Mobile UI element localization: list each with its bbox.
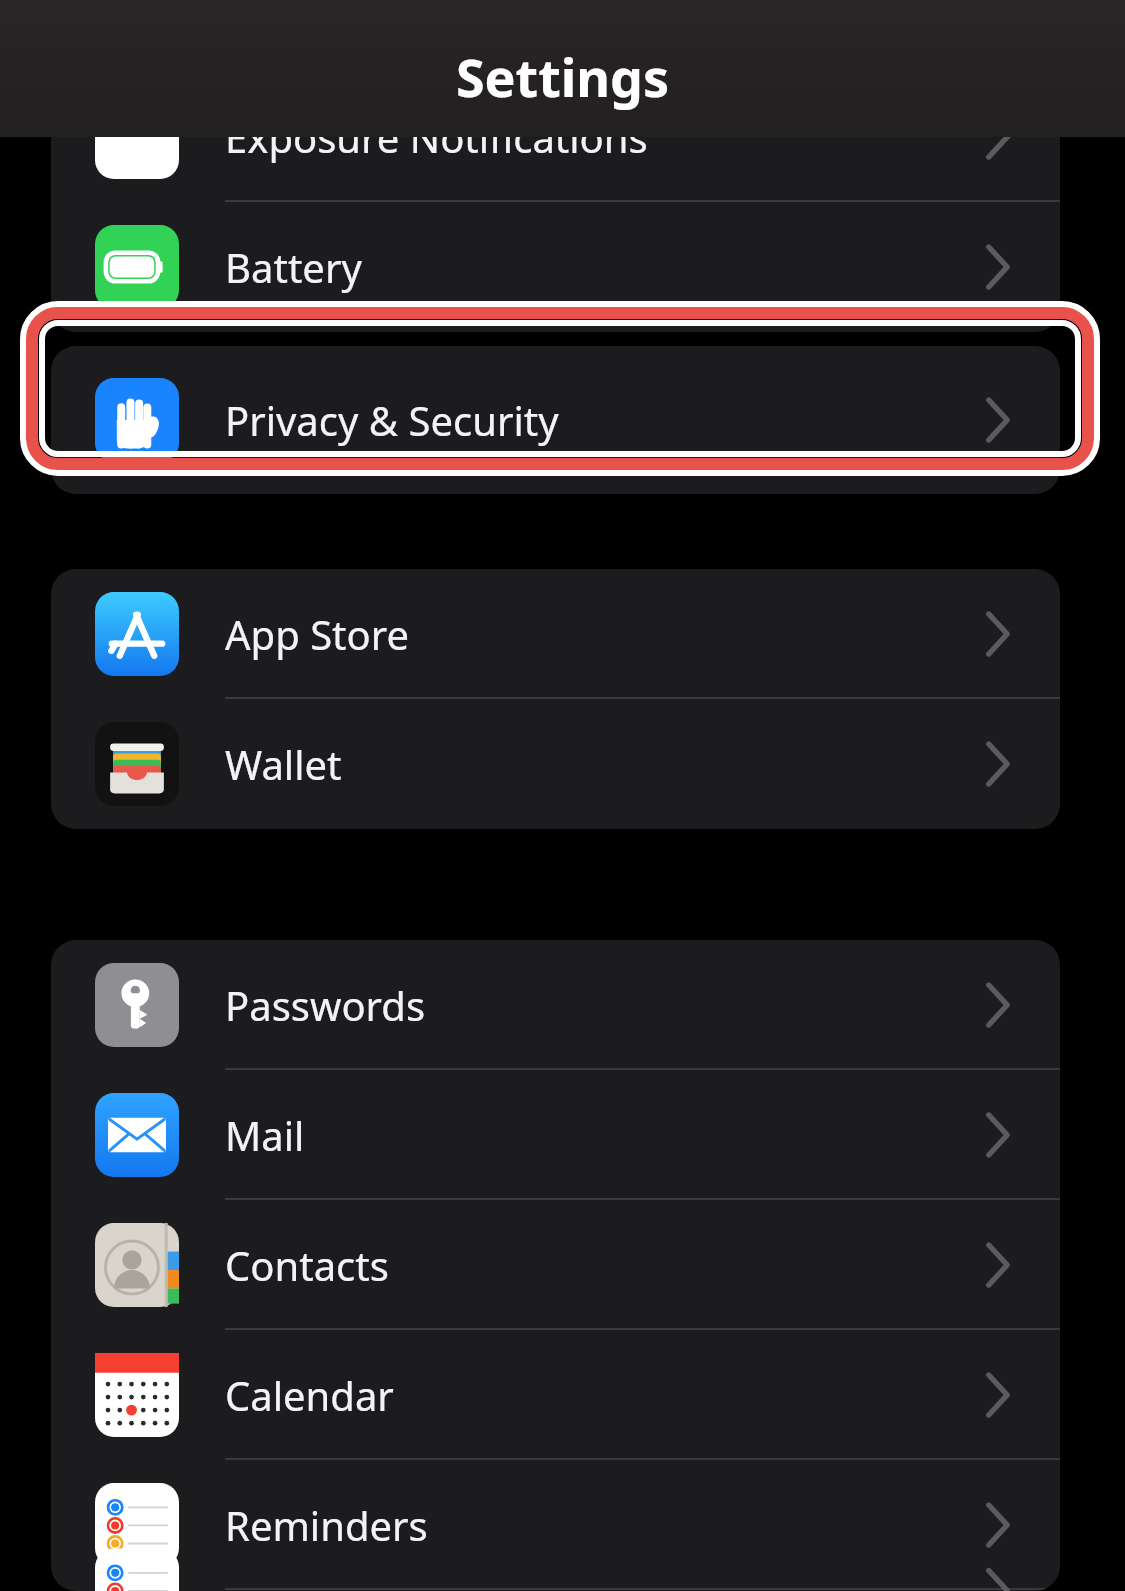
button[interactable]: Calendar (51, 1330, 1060, 1460)
button[interactable]: App Store (51, 569, 1060, 699)
button[interactable]: Mail (51, 1070, 1060, 1200)
staticText: Privacy & Security (225, 393, 559, 447)
staticText: Contacts (225, 1238, 389, 1292)
staticText: App Store (225, 607, 410, 661)
button[interactable]: Passwords (51, 940, 1060, 1070)
button[interactable]: Exposure Notifications (51, 72, 1060, 202)
staticText: Battery (225, 240, 362, 294)
staticText: Calendar (225, 1368, 394, 1422)
staticText: Mail (225, 1108, 305, 1162)
button[interactable]: Reminders (51, 1460, 1060, 1590)
staticText: Passwords (225, 978, 426, 1032)
button[interactable]: Battery (51, 202, 1060, 332)
button[interactable]: Wallet (51, 699, 1060, 829)
button[interactable]: Privacy & Security (51, 346, 1060, 494)
button[interactable]: Contacts (51, 1200, 1060, 1330)
staticText: Settings (0, 41, 1125, 112)
button[interactable]: Notes (51, 1590, 1060, 1591)
staticText: Wallet (225, 737, 342, 791)
staticText: Reminders (225, 1498, 428, 1552)
staticText: Exposure Notifications (225, 110, 648, 164)
